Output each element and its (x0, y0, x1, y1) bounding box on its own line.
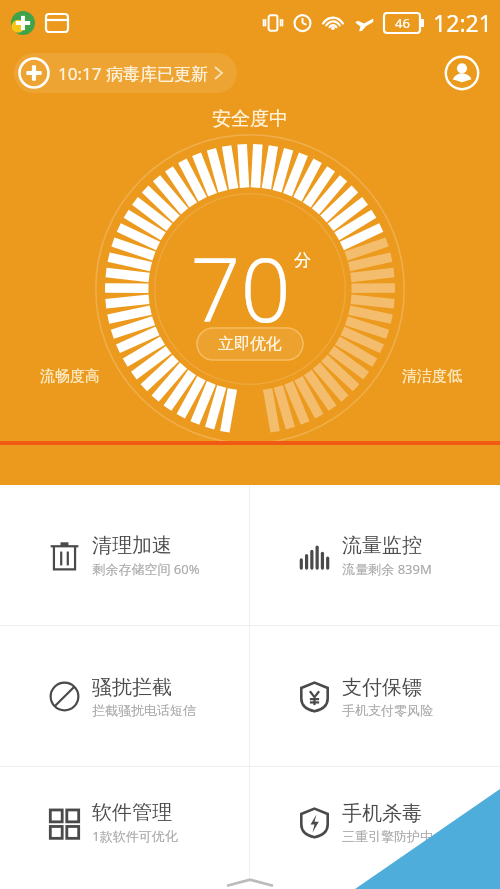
staticText: 流量监控 (342, 533, 422, 558)
button[interactable]: 10:17 病毒库已更新 (14, 53, 237, 93)
button[interactable]: 立即优化 (196, 327, 304, 361)
staticText: 流量剩余 839M (342, 560, 432, 578)
staticText: 10:17 病毒库已更新 (58, 62, 208, 85)
staticText: 手机杀毒 (342, 801, 422, 826)
staticText: 46 (395, 14, 410, 32)
button[interactable]: Account (442, 53, 482, 93)
button[interactable]: 支付保镖 (250, 626, 500, 766)
staticText: 支付保镖 (342, 675, 422, 700)
button[interactable]: 流量监控 (250, 485, 500, 625)
staticText: 剩余存储空间 60% (92, 560, 200, 578)
staticText: 拦截骚扰电话短信 (92, 702, 196, 718)
staticText: 骚扰拦截 (92, 675, 172, 700)
staticText: 分 (294, 250, 311, 271)
button[interactable]: 手机杀毒 (250, 767, 500, 877)
staticText: 清理加速 (92, 533, 172, 558)
staticText: 软件管理 (92, 800, 172, 825)
staticText: 立即优化 (218, 334, 282, 354)
staticText: 12:21 (433, 7, 492, 38)
staticText: 清洁度低 (402, 367, 462, 386)
button[interactable]: 软件管理 (0, 767, 249, 877)
staticText: 流畅度高 (40, 367, 100, 386)
staticText: 1款软件可优化 (92, 827, 178, 845)
staticText: 安全度中 (212, 107, 288, 131)
staticText: 手机支付零风险 (342, 702, 433, 718)
button[interactable]: 骚扰拦截 (0, 626, 249, 766)
staticText: 三重引擎防护中 (342, 828, 433, 844)
staticText: 70 (190, 228, 291, 348)
button[interactable]: 清理加速 (0, 485, 249, 625)
